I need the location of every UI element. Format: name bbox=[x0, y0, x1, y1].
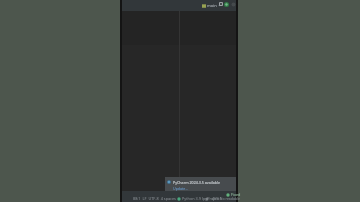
staticText: 46% No readable bbox=[212, 196, 240, 201]
staticText: PyCharm 2024.3.5 available bbox=[173, 180, 221, 185]
staticText: 88:1 LF UTF-8 4 spaces bbox=[133, 196, 176, 201]
staticText: main bbox=[207, 3, 217, 8]
staticText: Python 3.9 (pyProject) bbox=[182, 196, 221, 201]
button[interactable]: main bbox=[201, 2, 222, 9]
button[interactable]: PyCharm 2024.3.5 available bbox=[165, 177, 236, 191]
button[interactable]: Run bbox=[219, 2, 223, 6]
staticText: Fixed bbox=[231, 192, 241, 197]
button[interactable]: Fixed bbox=[226, 192, 241, 197]
staticText: Update... bbox=[173, 186, 189, 191]
button[interactable]: Debug bbox=[224, 2, 229, 7]
button[interactable]: More options bbox=[231, 2, 236, 7]
